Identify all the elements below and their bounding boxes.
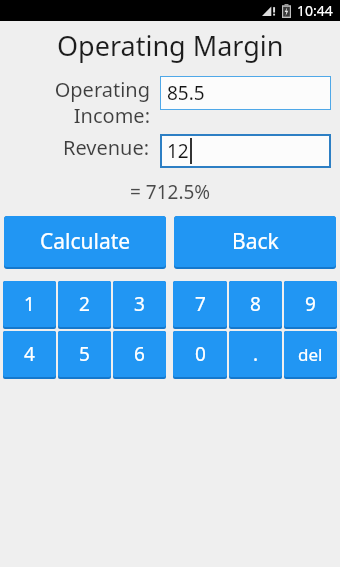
staticText: Revenue: xyxy=(63,134,150,161)
staticText: 9 xyxy=(305,291,316,317)
staticText: 7 xyxy=(195,291,206,317)
staticText: 1 xyxy=(24,291,35,317)
staticText: 8 xyxy=(250,291,261,317)
button[interactable]: 9 xyxy=(284,281,337,327)
staticText: 2 xyxy=(79,291,90,317)
button[interactable]: Back xyxy=(174,216,336,267)
button[interactable]: Calculate xyxy=(4,216,166,267)
button[interactable]: 6 xyxy=(113,331,166,377)
button[interactable]: 0 xyxy=(173,331,227,377)
staticText: = 712.5% xyxy=(130,179,211,205)
staticText: 4 xyxy=(24,341,35,367)
button[interactable]: 5 xyxy=(58,331,111,377)
staticText: Back xyxy=(232,227,279,256)
staticText: del xyxy=(298,343,323,366)
staticText: Calculate xyxy=(40,227,131,256)
button[interactable]: . xyxy=(229,331,282,377)
button[interactable]: del xyxy=(284,331,337,377)
staticText: 5 xyxy=(79,341,90,367)
button[interactable]: 85.5 xyxy=(160,76,331,110)
staticText: 0 xyxy=(195,341,206,367)
button[interactable]: 1 xyxy=(3,281,56,327)
staticText: 12 xyxy=(167,138,189,164)
button[interactable]: 8 xyxy=(229,281,282,327)
button[interactable]: 4 xyxy=(3,331,56,377)
button[interactable]: 3 xyxy=(113,281,166,327)
staticText: 6 xyxy=(134,341,145,367)
button[interactable]: 2 xyxy=(58,281,111,327)
staticText: 10:44 xyxy=(297,1,333,20)
staticText: 3 xyxy=(134,291,145,317)
staticText: Operating Income: xyxy=(54,76,150,128)
button[interactable]: 12 xyxy=(160,134,331,168)
staticText: Operating Margin xyxy=(57,27,284,64)
staticText: 85.5 xyxy=(167,80,205,106)
button[interactable]: 7 xyxy=(173,281,227,327)
staticText: . xyxy=(253,341,259,367)
